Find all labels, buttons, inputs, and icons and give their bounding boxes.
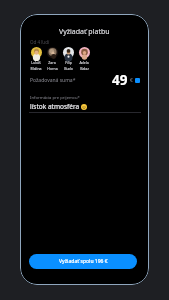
- staticText: Filip: [65, 60, 72, 65]
- staticText: 49: [112, 71, 128, 89]
- staticText: €: [130, 77, 133, 84]
- staticText: Lukáš: [31, 60, 41, 65]
- staticText: Budo: [64, 66, 73, 71]
- button[interactable]: Zara: [44, 47, 60, 71]
- staticText: Od 4 ľudí: [30, 39, 50, 45]
- staticText: Adela: [79, 60, 89, 65]
- staticText: Balaz: [80, 66, 89, 71]
- staticText: Malina: [30, 66, 42, 71]
- button[interactable]: Adela: [76, 47, 92, 71]
- staticText: Vyžiadať spolu 196 €: [59, 258, 108, 265]
- staticText: Informácia pre prijemcu*: [30, 95, 80, 101]
- staticText: Vyžiadať platbu: [59, 27, 110, 37]
- staticText: Zara: [48, 60, 56, 65]
- staticText: Požadovaná suma*: [30, 77, 76, 84]
- button[interactable]: Filip: [60, 47, 76, 71]
- staticText: Horna: [47, 66, 58, 71]
- button[interactable]: Lukáš: [28, 47, 44, 71]
- staticText: lístok atmosféra: [30, 102, 81, 111]
- button[interactable]: Vyžiadať spolu 196 €: [29, 254, 137, 269]
